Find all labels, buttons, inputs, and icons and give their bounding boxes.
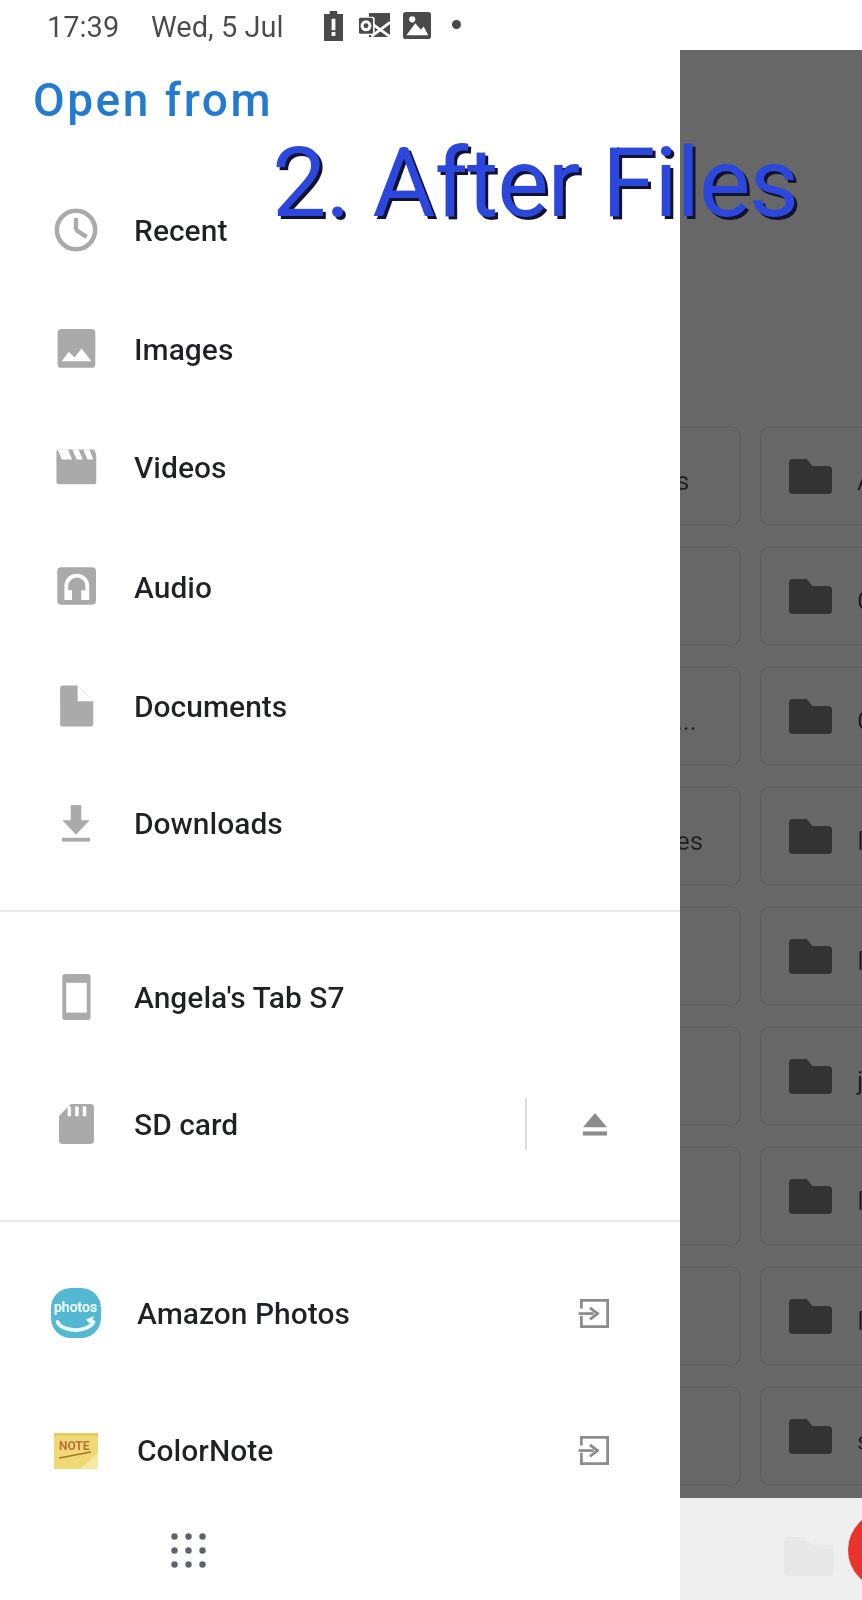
- button[interactable]: [592, 786, 741, 886]
- button[interactable]: [760, 1026, 862, 1126]
- staticText: Amazon Photos: [137, 1296, 350, 1331]
- button[interactable]: Open in app: [528, 1253, 662, 1373]
- button[interactable]: NOTE: [0, 1390, 680, 1510]
- staticText: Recent: [134, 213, 228, 248]
- button[interactable]: Eject SD card: [528, 1065, 680, 1183]
- staticText: Wed, 5 Jul: [151, 10, 284, 44]
- staticText: j: [857, 1066, 862, 1096]
- staticText: Downloads: [134, 806, 283, 841]
- button[interactable]: Images: [0, 290, 680, 408]
- staticText: Open from: [33, 73, 274, 127]
- button[interactable]: SD card: [0, 1065, 680, 1183]
- staticText: Documents: [134, 689, 288, 724]
- staticText: SD card: [134, 1107, 239, 1142]
- button[interactable]: Documents: [0, 647, 680, 765]
- staticText: Audio: [134, 570, 212, 605]
- button[interactable]: Recent: [0, 171, 680, 289]
- staticText: ...: [676, 706, 697, 736]
- button[interactable]: [592, 546, 741, 646]
- button[interactable]: [592, 1026, 741, 1126]
- button[interactable]: [592, 426, 741, 526]
- staticText: I: [857, 946, 862, 976]
- button[interactable]: [760, 426, 862, 526]
- button[interactable]: [760, 1266, 862, 1366]
- staticText: es: [676, 826, 704, 856]
- staticText: A: [857, 466, 862, 496]
- button[interactable]: [592, 1146, 741, 1246]
- staticText: 17:39: [47, 10, 120, 44]
- staticText: s: [857, 1426, 862, 1456]
- staticText: Images: [134, 332, 234, 367]
- button[interactable]: New: [848, 1511, 862, 1589]
- button[interactable]: Angela's Tab S7: [0, 938, 680, 1056]
- staticText: Videos: [134, 450, 227, 485]
- staticText: Angela's Tab S7: [134, 980, 345, 1015]
- button[interactable]: Open in app: [528, 1390, 662, 1510]
- staticText: C: [857, 706, 862, 736]
- staticText: I: [857, 826, 862, 856]
- staticText: 2. After Files: [272, 126, 798, 240]
- button[interactable]: All apps: [161, 1523, 215, 1577]
- button[interactable]: [592, 666, 741, 766]
- button[interactable]: Downloads: [0, 764, 680, 882]
- button[interactable]: [760, 786, 862, 886]
- button[interactable]: [760, 1146, 862, 1246]
- button[interactable]: photos: [0, 1253, 680, 1373]
- staticText: s: [676, 466, 690, 496]
- button[interactable]: Audio: [0, 528, 680, 646]
- button[interactable]: [760, 906, 862, 1006]
- button[interactable]: [592, 906, 741, 1006]
- staticText: I: [857, 1306, 862, 1336]
- staticText: 2. After Files: [275, 129, 801, 243]
- button[interactable]: [760, 1386, 862, 1486]
- staticText: photos: [54, 1299, 98, 1315]
- button[interactable]: Videos: [0, 408, 680, 526]
- button[interactable]: [592, 1266, 741, 1366]
- button[interactable]: [592, 1386, 741, 1486]
- button[interactable]: [760, 666, 862, 766]
- button[interactable]: [760, 546, 862, 646]
- staticText: I: [857, 1186, 862, 1216]
- staticText: ColorNote: [137, 1433, 274, 1468]
- staticText: C: [857, 586, 862, 616]
- staticText: NOTE: [59, 1439, 90, 1453]
